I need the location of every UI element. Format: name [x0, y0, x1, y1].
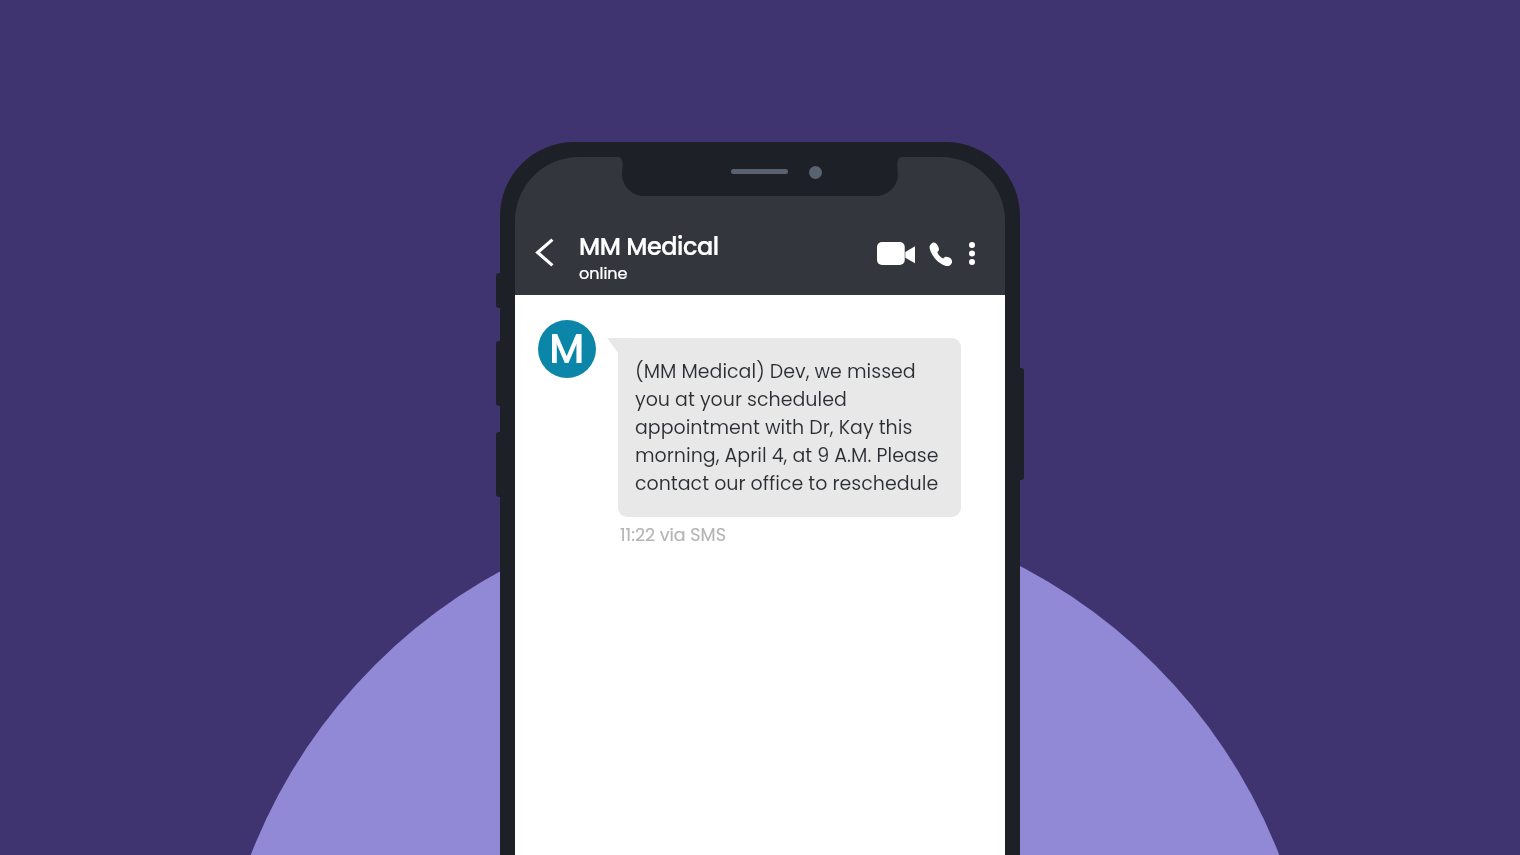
button[interactable]: Video call [867, 234, 924, 273]
staticText: online [579, 262, 628, 284]
staticText: MM Medical [579, 230, 719, 264]
staticText: M [549, 321, 585, 377]
button[interactable]: Back [523, 231, 566, 274]
button[interactable]: (MM Medical) Dev, we missed you at your … [618, 338, 961, 517]
staticText: (MM Medical) Dev, we missed you at your … [635, 357, 947, 497]
staticText: 11:22 via SMS [620, 523, 726, 548]
button[interactable]: Call [921, 234, 960, 273]
button[interactable]: More options [956, 234, 988, 273]
button[interactable]: MM Medical avatar [538, 320, 596, 378]
